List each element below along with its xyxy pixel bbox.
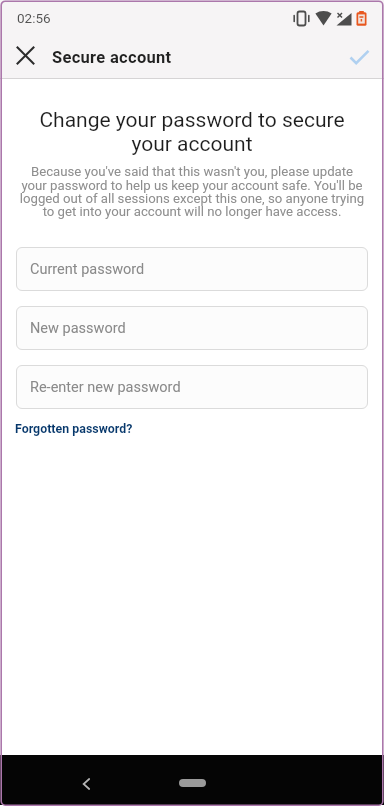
button[interactable]: New password	[16, 306, 368, 350]
button[interactable]	[76, 774, 96, 794]
staticText: 02:56	[17, 10, 51, 26]
button[interactable]	[334, 36, 384, 78]
staticText: Change your password to secure your acco…	[0, 108, 384, 156]
staticText: Secure account	[52, 48, 172, 67]
staticText: New password	[30, 320, 126, 337]
button[interactable]	[3, 34, 48, 76]
button[interactable]: Current password	[16, 247, 368, 291]
button[interactable]: Forgotten password?	[15, 421, 133, 436]
staticText: Current password	[30, 261, 145, 278]
staticText: Re-enter new password	[30, 379, 181, 396]
button[interactable]	[179, 779, 206, 787]
button[interactable]: Re-enter new password	[16, 365, 368, 409]
staticText: Because you've said that this wasn't you…	[0, 164, 384, 219]
